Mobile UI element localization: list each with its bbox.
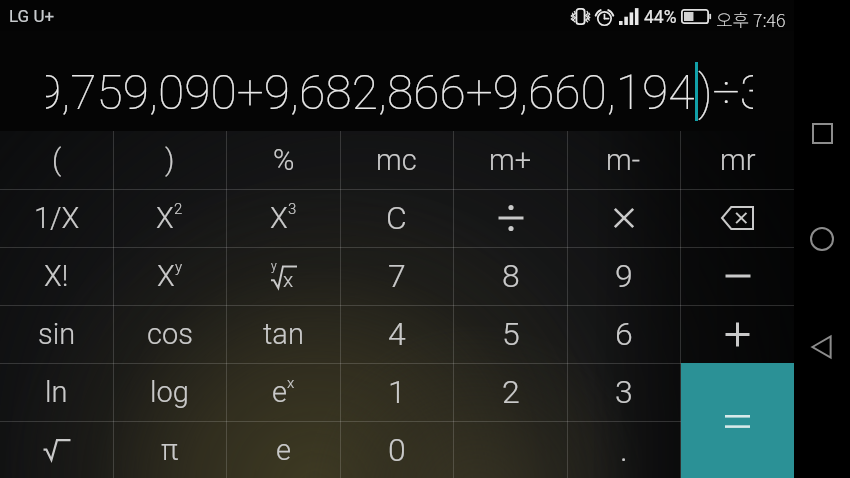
button[interactable]: log [113,363,226,421]
button[interactable]: Square root [0,421,113,478]
button[interactable]: X [227,189,340,247]
staticText: ( [52,143,62,177]
staticText: 1/X [34,201,80,235]
staticText: ln [45,375,68,409]
staticText: m- [606,143,641,177]
staticText: X [270,201,288,235]
staticText: 6 [615,315,633,353]
other: Multiply [614,208,634,228]
button[interactable]: X [113,247,226,305]
button[interactable]: Multiply [567,189,680,247]
button[interactable]: C [340,189,453,247]
other: Square root [43,439,71,461]
button[interactable]: ln [0,363,113,421]
staticText: y [271,259,277,273]
other: Equals [725,415,750,431]
button[interactable]: % [227,131,340,189]
button[interactable] [454,421,567,478]
staticText: 2 [502,373,520,411]
staticText: ) [165,143,175,177]
staticText: e [276,433,291,467]
staticText: sin [38,317,76,351]
staticText: X [157,259,175,293]
button[interactable]: mc [340,131,453,189]
button[interactable]: ) [113,131,226,189]
button[interactable]: 7 [340,247,453,305]
button[interactable]: m- [567,131,680,189]
staticText: log [150,375,189,409]
staticText: C [386,199,407,237]
staticText: 9 [615,257,633,295]
button[interactable]: cos [113,305,226,363]
staticText: 3 [288,200,297,218]
staticText: 1 [388,373,406,411]
staticText: y [175,258,183,276]
button[interactable]: Home [802,219,842,259]
other: Minus [725,273,751,279]
button[interactable]: 8 [454,247,567,305]
button[interactable]: 4 [340,305,453,363]
staticText: X [156,201,174,235]
button[interactable]: X! [0,247,113,305]
button[interactable]: . [567,421,680,478]
staticText: 0 [388,431,406,469]
button[interactable]: Equals [681,363,794,478]
button[interactable]: 1 [340,363,453,421]
staticText: mr [720,143,756,177]
button[interactable]: π [113,421,226,478]
staticText: LG U+ [9,6,55,26]
button[interactable]: m+ [454,131,567,189]
button[interactable]: 0 [340,421,453,478]
staticText: tan [263,317,304,351]
button[interactable]: e [227,363,340,421]
button[interactable]: Minus [681,247,794,305]
button[interactable]: 5 [454,305,567,363]
other: Plus [725,322,750,347]
button[interactable]: Back [802,327,842,367]
staticText: 4 [388,315,406,353]
staticText: mc [376,143,417,177]
staticText: e [272,375,287,409]
button[interactable]: Recents [802,113,842,153]
button[interactable]: sin [0,305,113,363]
other: Backspace [721,206,754,230]
staticText: 오후 7:46 [716,6,786,32]
button[interactable]: 2 [454,363,567,421]
staticText: 9,759,090+9,682,866+9,660,194 [46,64,695,120]
staticText: 8 [502,257,520,295]
staticText: 7 [388,257,406,295]
button[interactable]: tan [227,305,340,363]
button[interactable]: e [227,421,340,478]
button[interactable]: Plus [681,305,794,363]
staticText: 2 [174,200,183,218]
staticText: . [620,431,628,469]
staticText: cos [147,317,193,351]
staticText: 44% [644,7,677,28]
button[interactable]: 3 [567,363,680,421]
button[interactable]: Divide [454,189,567,247]
button[interactable]: mr [681,131,794,189]
button[interactable]: ( [0,131,113,189]
button[interactable]: 1/X [0,189,113,247]
staticText: x [283,268,294,293]
staticText: π [161,433,179,467]
staticText: 3 [615,373,633,411]
other: Y-th root of X [271,263,297,289]
other: Divide [498,202,524,234]
button[interactable]: y [227,247,340,305]
button[interactable]: Backspace [681,189,794,247]
staticText: X! [44,259,69,293]
staticText: m+ [489,143,532,177]
button[interactable]: 9 [567,247,680,305]
staticText: 5 [502,315,520,353]
staticText: % [273,143,295,177]
button[interactable]: X [113,189,226,247]
button[interactable]: 6 [567,305,680,363]
staticText: )÷3 [698,64,753,120]
staticText: x [287,374,295,392]
